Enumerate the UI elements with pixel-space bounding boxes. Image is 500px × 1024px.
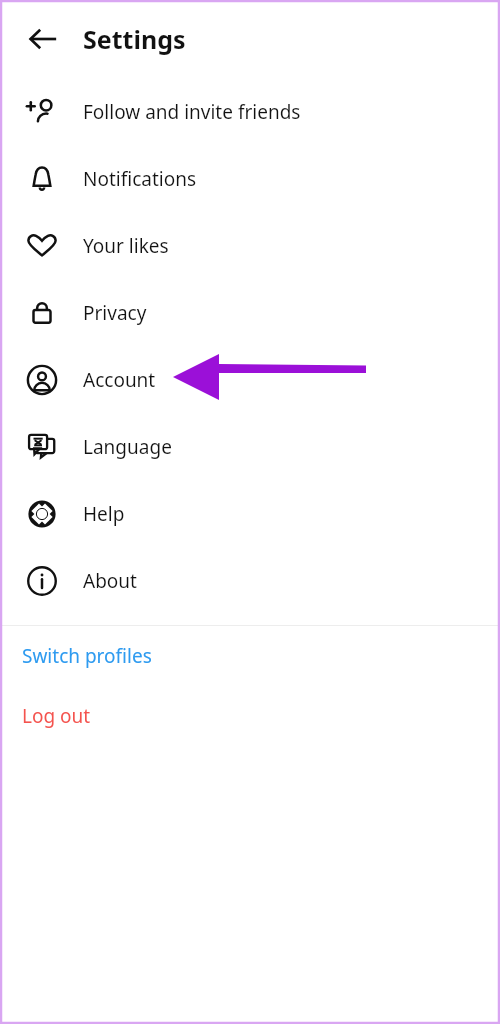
button[interactable]: Notifications	[0, 145, 500, 212]
staticText: Language	[83, 434, 172, 460]
button[interactable]: About	[0, 547, 500, 614]
staticText: Help	[83, 501, 125, 527]
staticText: Follow and invite friends	[83, 99, 301, 125]
button[interactable]: Privacy	[0, 279, 500, 346]
button[interactable]: Back	[20, 16, 66, 62]
button[interactable]: Account	[0, 346, 500, 413]
button[interactable]: Switch profiles	[0, 626, 500, 686]
button[interactable]: Your likes	[0, 212, 500, 279]
staticText: About	[83, 568, 137, 594]
button[interactable]: Language	[0, 413, 500, 480]
staticText: Privacy	[83, 300, 147, 326]
staticText: Notifications	[83, 166, 197, 192]
staticText: Account	[83, 367, 156, 393]
button[interactable]: Log out	[0, 686, 500, 746]
button[interactable]: Help	[0, 480, 500, 547]
staticText: Log out	[22, 703, 91, 729]
button[interactable]: Follow and invite friends	[0, 78, 500, 145]
staticText: Your likes	[83, 233, 169, 259]
staticText: Switch profiles	[22, 643, 152, 669]
staticText: Settings	[83, 22, 186, 56]
